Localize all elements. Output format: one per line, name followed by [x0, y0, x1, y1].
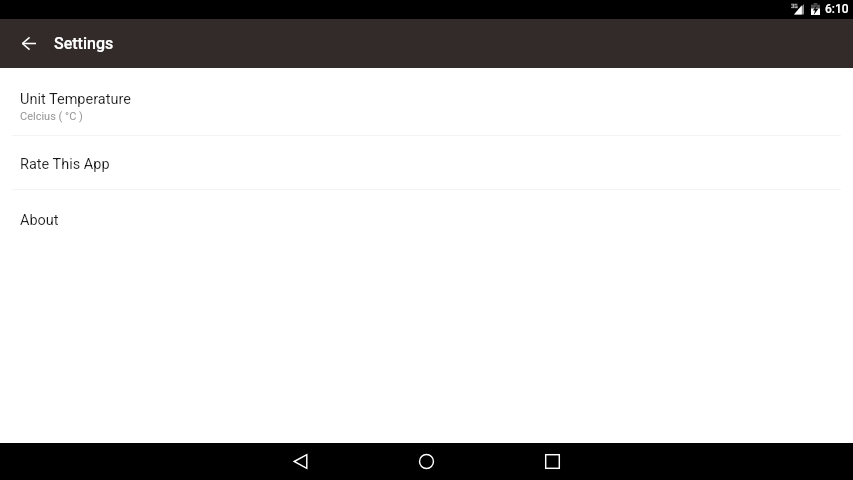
button[interactable]: Back [282, 443, 319, 480]
staticText: Settings [54, 34, 114, 53]
staticText: Rate This App [20, 156, 110, 173]
staticText: Celcius ( °C ) [20, 110, 83, 123]
button[interactable]: Unit Temperature [0, 68, 853, 135]
staticText: 6:10 [825, 2, 849, 16]
button[interactable]: Back [11, 26, 46, 61]
button[interactable]: Home [408, 443, 445, 480]
button[interactable]: About [0, 190, 853, 251]
staticText: About [20, 212, 59, 229]
staticText: Unit Temperature [20, 91, 131, 108]
button[interactable]: Rate This App [0, 136, 853, 189]
button[interactable]: Recent apps [534, 443, 571, 480]
